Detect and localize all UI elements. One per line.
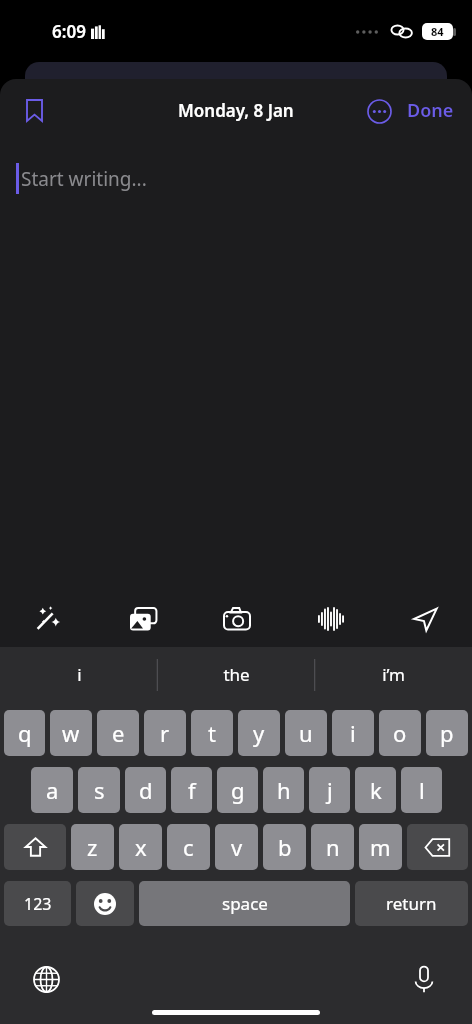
button[interactable]: f bbox=[171, 767, 212, 813]
staticText: 123 bbox=[24, 893, 52, 915]
button[interactable]: Emoji bbox=[76, 881, 134, 926]
button[interactable]: v bbox=[215, 824, 258, 870]
button[interactable]: g bbox=[217, 767, 258, 813]
button[interactable]: h bbox=[263, 767, 304, 813]
staticText: w bbox=[62, 718, 80, 748]
button[interactable]: Photos bbox=[95, 590, 190, 647]
staticText: space bbox=[222, 892, 268, 915]
button[interactable]: p bbox=[426, 710, 468, 756]
staticText: o bbox=[393, 718, 407, 748]
button[interactable]: n bbox=[311, 824, 354, 870]
button[interactable]: Backspace bbox=[407, 824, 468, 870]
staticText: h bbox=[277, 775, 291, 805]
button[interactable]: j bbox=[309, 767, 350, 813]
button[interactable]: More options bbox=[360, 92, 398, 130]
button[interactable]: i bbox=[332, 710, 374, 756]
staticText: f bbox=[188, 775, 196, 805]
staticText: m bbox=[370, 832, 391, 862]
staticText: g bbox=[231, 775, 245, 805]
button[interactable]: o bbox=[379, 710, 421, 756]
staticText: z bbox=[87, 832, 98, 862]
button[interactable]: Voice input bbox=[402, 957, 446, 1001]
staticText: j bbox=[327, 775, 333, 805]
button[interactable]: u bbox=[285, 710, 327, 756]
button[interactable]: c bbox=[167, 824, 210, 870]
staticText: q bbox=[18, 718, 32, 748]
staticText: u bbox=[299, 718, 313, 748]
button[interactable]: Bookmark bbox=[14, 90, 54, 130]
button[interactable]: the bbox=[158, 647, 315, 702]
button[interactable]: Audio bbox=[284, 590, 378, 647]
button[interactable]: d bbox=[125, 767, 166, 813]
staticText: n bbox=[326, 832, 340, 862]
button[interactable]: m bbox=[359, 824, 402, 870]
staticText: the bbox=[223, 663, 250, 686]
button[interactable]: Shift bbox=[4, 824, 66, 870]
button[interactable]: k bbox=[355, 767, 396, 813]
staticText: e bbox=[112, 718, 125, 748]
staticText: return bbox=[386, 892, 437, 915]
button[interactable]: return bbox=[355, 881, 468, 926]
staticText: Start writing... bbox=[21, 166, 147, 192]
button[interactable]: i’m bbox=[315, 647, 472, 702]
staticText: Monday, 8 Jan bbox=[178, 99, 294, 122]
staticText: t bbox=[208, 718, 216, 748]
button[interactable]: q bbox=[4, 710, 45, 756]
button[interactable]: Send bbox=[378, 590, 472, 647]
staticText: 6:09 bbox=[52, 20, 86, 43]
staticText: i bbox=[350, 718, 356, 748]
button[interactable]: Magic bbox=[0, 590, 95, 647]
button[interactable]: z bbox=[71, 824, 114, 870]
staticText: r bbox=[160, 718, 170, 748]
button[interactable]: Done bbox=[402, 90, 459, 131]
button[interactable]: t bbox=[191, 710, 233, 756]
button[interactable]: 123 bbox=[4, 881, 71, 926]
staticText: i’m bbox=[382, 663, 405, 686]
staticText: k bbox=[370, 775, 382, 805]
staticText: Done bbox=[407, 98, 454, 123]
button[interactable]: e bbox=[97, 710, 139, 756]
staticText: v bbox=[231, 832, 243, 862]
button[interactable]: a bbox=[31, 767, 73, 813]
button[interactable]: x bbox=[119, 824, 162, 870]
staticText: s bbox=[94, 775, 105, 805]
staticText: a bbox=[46, 775, 59, 805]
staticText: 84 bbox=[431, 24, 444, 39]
button[interactable]: w bbox=[50, 710, 92, 756]
staticText: b bbox=[278, 832, 292, 862]
button[interactable]: b bbox=[263, 824, 306, 870]
staticText: p bbox=[440, 718, 454, 748]
staticText: x bbox=[135, 832, 147, 862]
button[interactable]: Change keyboard language bbox=[24, 957, 68, 1001]
button[interactable]: r bbox=[144, 710, 186, 756]
button[interactable]: l bbox=[401, 767, 442, 813]
staticText: c bbox=[183, 832, 194, 862]
staticText: d bbox=[139, 775, 153, 805]
staticText: l bbox=[419, 775, 425, 805]
staticText: y bbox=[253, 718, 265, 748]
staticText: i bbox=[77, 663, 82, 686]
button[interactable]: Camera bbox=[190, 590, 284, 647]
button[interactable]: space bbox=[139, 881, 350, 926]
button[interactable]: i bbox=[0, 647, 158, 702]
button[interactable]: y bbox=[238, 710, 280, 756]
button[interactable]: s bbox=[78, 767, 120, 813]
